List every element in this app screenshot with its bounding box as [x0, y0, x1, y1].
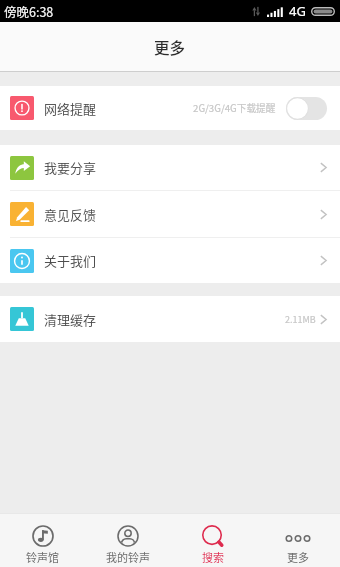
button[interactable]: 铃声馆: [0, 525, 85, 565]
staticText: 铃声馆: [26, 549, 59, 565]
staticText: 我要分享: [44, 158, 97, 177]
staticText: 更多: [287, 549, 309, 565]
button[interactable]: 更多: [255, 525, 340, 565]
staticText: 意见反馈: [44, 205, 97, 224]
staticText: 清理缓存: [44, 310, 97, 329]
staticText: 搜索: [202, 549, 224, 565]
staticText: 2.11MB: [285, 313, 316, 326]
button[interactable]: 清理缓存: [0, 296, 340, 342]
button[interactable]: 搜索: [170, 525, 255, 565]
button[interactable]: 网络提醒: [0, 86, 340, 130]
button[interactable]: 意见反馈: [0, 191, 340, 237]
staticText: 傍晚6:38: [4, 2, 54, 20]
button[interactable]: 我的铃声: [85, 525, 170, 565]
staticText: 4G: [289, 2, 306, 20]
staticText: 网络提醒: [44, 99, 97, 118]
staticText: 我的铃声: [106, 549, 150, 565]
button[interactable]: 我要分享: [0, 145, 340, 190]
staticText: 关于我们: [44, 251, 97, 270]
button[interactable]: 关于我们: [0, 238, 340, 283]
staticText: 更多: [154, 36, 186, 58]
staticText: 2G/3G/4G下载提醒: [193, 101, 276, 115]
